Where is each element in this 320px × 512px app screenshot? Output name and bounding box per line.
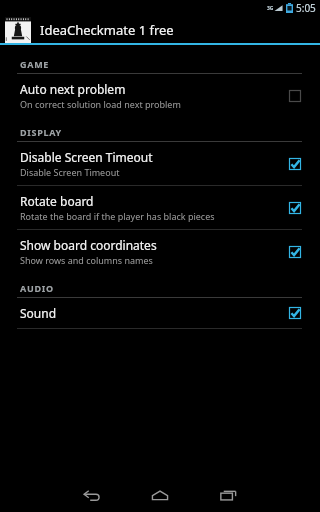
staticText: Auto next problem xyxy=(20,81,126,97)
staticText: Disable Screen Timeout xyxy=(20,166,120,178)
button[interactable]: Checked xyxy=(288,245,302,259)
staticText: GAME xyxy=(20,58,50,70)
button[interactable]: Disable Screen Timeout xyxy=(0,142,320,185)
staticText: 3G xyxy=(267,5,274,12)
staticText: On correct solution load next problem xyxy=(20,98,181,110)
staticText: AUDIO xyxy=(20,282,54,294)
button[interactable]: Unchecked xyxy=(288,89,302,103)
staticText: 5:05 xyxy=(296,1,316,15)
staticText: Show rows and columns names xyxy=(20,254,153,266)
button[interactable]: Checked xyxy=(288,306,302,320)
button[interactable]: Checked xyxy=(288,157,302,171)
staticText: Sound xyxy=(20,305,57,321)
staticText: Show board coordinates xyxy=(20,237,157,253)
button[interactable]: Back xyxy=(58,478,126,512)
button[interactable]: Home xyxy=(126,478,194,512)
button[interactable]: Show board coordinates xyxy=(0,230,320,273)
button[interactable]: Checked xyxy=(288,201,302,215)
button[interactable]: Auto next problem xyxy=(0,74,320,117)
button[interactable]: Rotate board xyxy=(0,186,320,229)
staticText: Rotate the board if the player has black… xyxy=(20,210,215,222)
button[interactable]: Sound xyxy=(0,298,320,328)
staticText: Disable Screen Timeout xyxy=(20,149,153,165)
button[interactable]: Recents xyxy=(194,478,262,512)
staticText: IdeaCheckmate 1 free xyxy=(40,21,174,39)
staticText: Rotate board xyxy=(20,193,94,209)
staticText: DISPLAY xyxy=(20,126,62,138)
